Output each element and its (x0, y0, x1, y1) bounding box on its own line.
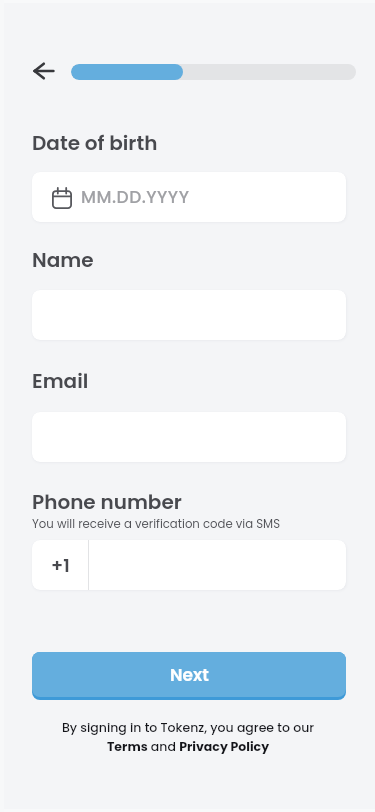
button[interactable]: Back (27, 54, 61, 88)
button[interactable]: Next (32, 652, 346, 697)
staticText: Date of birth (32, 129, 158, 157)
staticText: Email (32, 367, 89, 395)
staticText: Name (32, 246, 94, 274)
staticText: +1 (51, 553, 70, 578)
staticText: Next (170, 663, 209, 687)
staticText: You will receive a verification code via… (32, 516, 281, 532)
staticText: MM.DD.YYYY (81, 185, 190, 209)
button[interactable]: MM.DD.YYYY (32, 172, 346, 222)
staticText: By signing in to Tokenz, you agree to ou… (1, 719, 375, 755)
staticText: Phone number (32, 488, 182, 516)
button[interactable]: +1 (32, 540, 88, 590)
